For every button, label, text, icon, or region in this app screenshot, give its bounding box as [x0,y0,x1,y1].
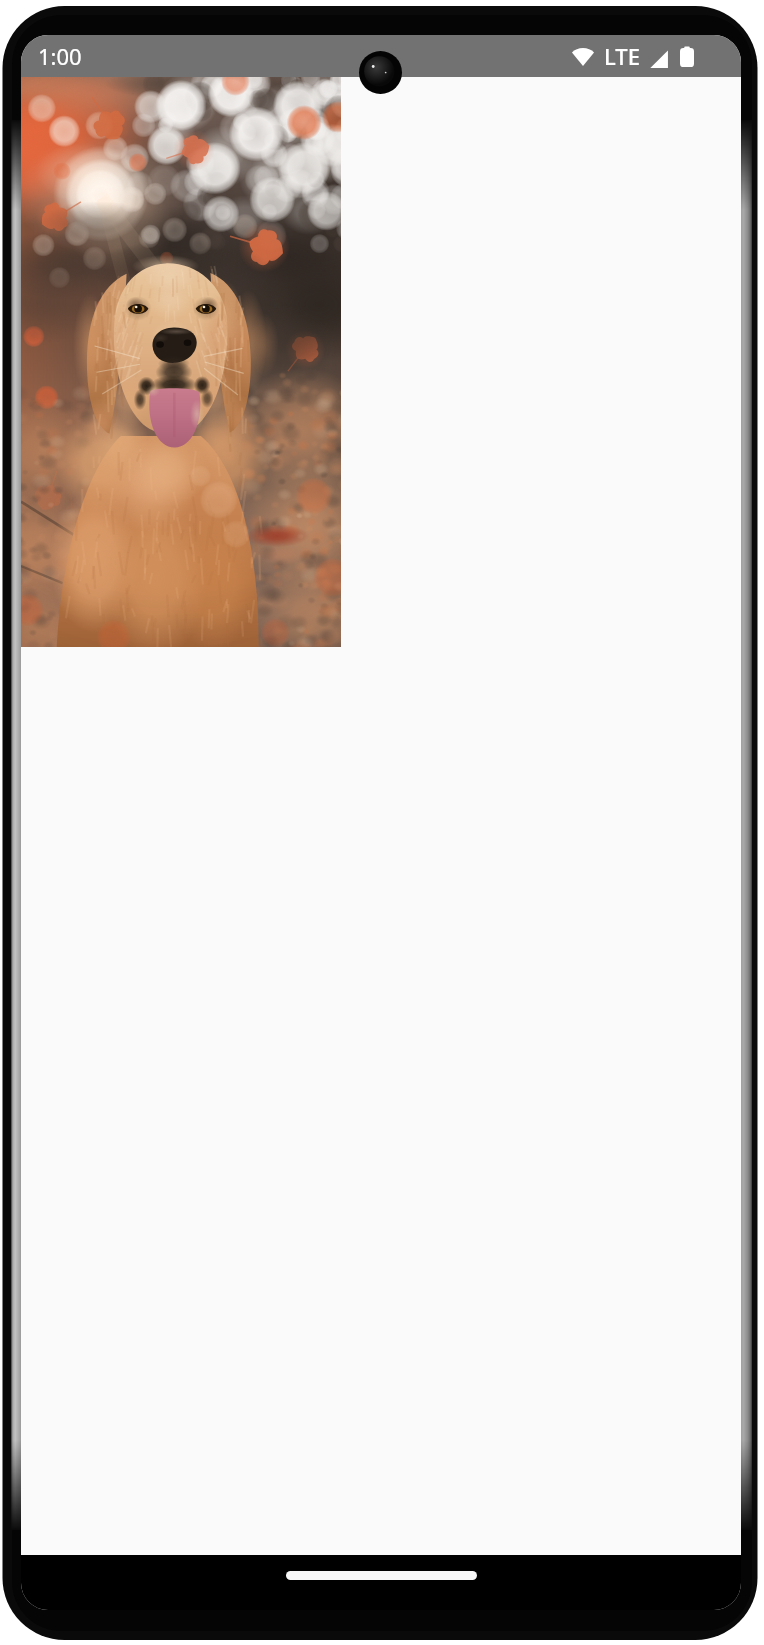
staticText: 1:00 [38,41,82,71]
staticText: LTE [604,41,640,71]
button[interactable]: Home [286,1571,477,1580]
button[interactable]: Photo of a golden retriever in autumn le… [21,77,341,647]
